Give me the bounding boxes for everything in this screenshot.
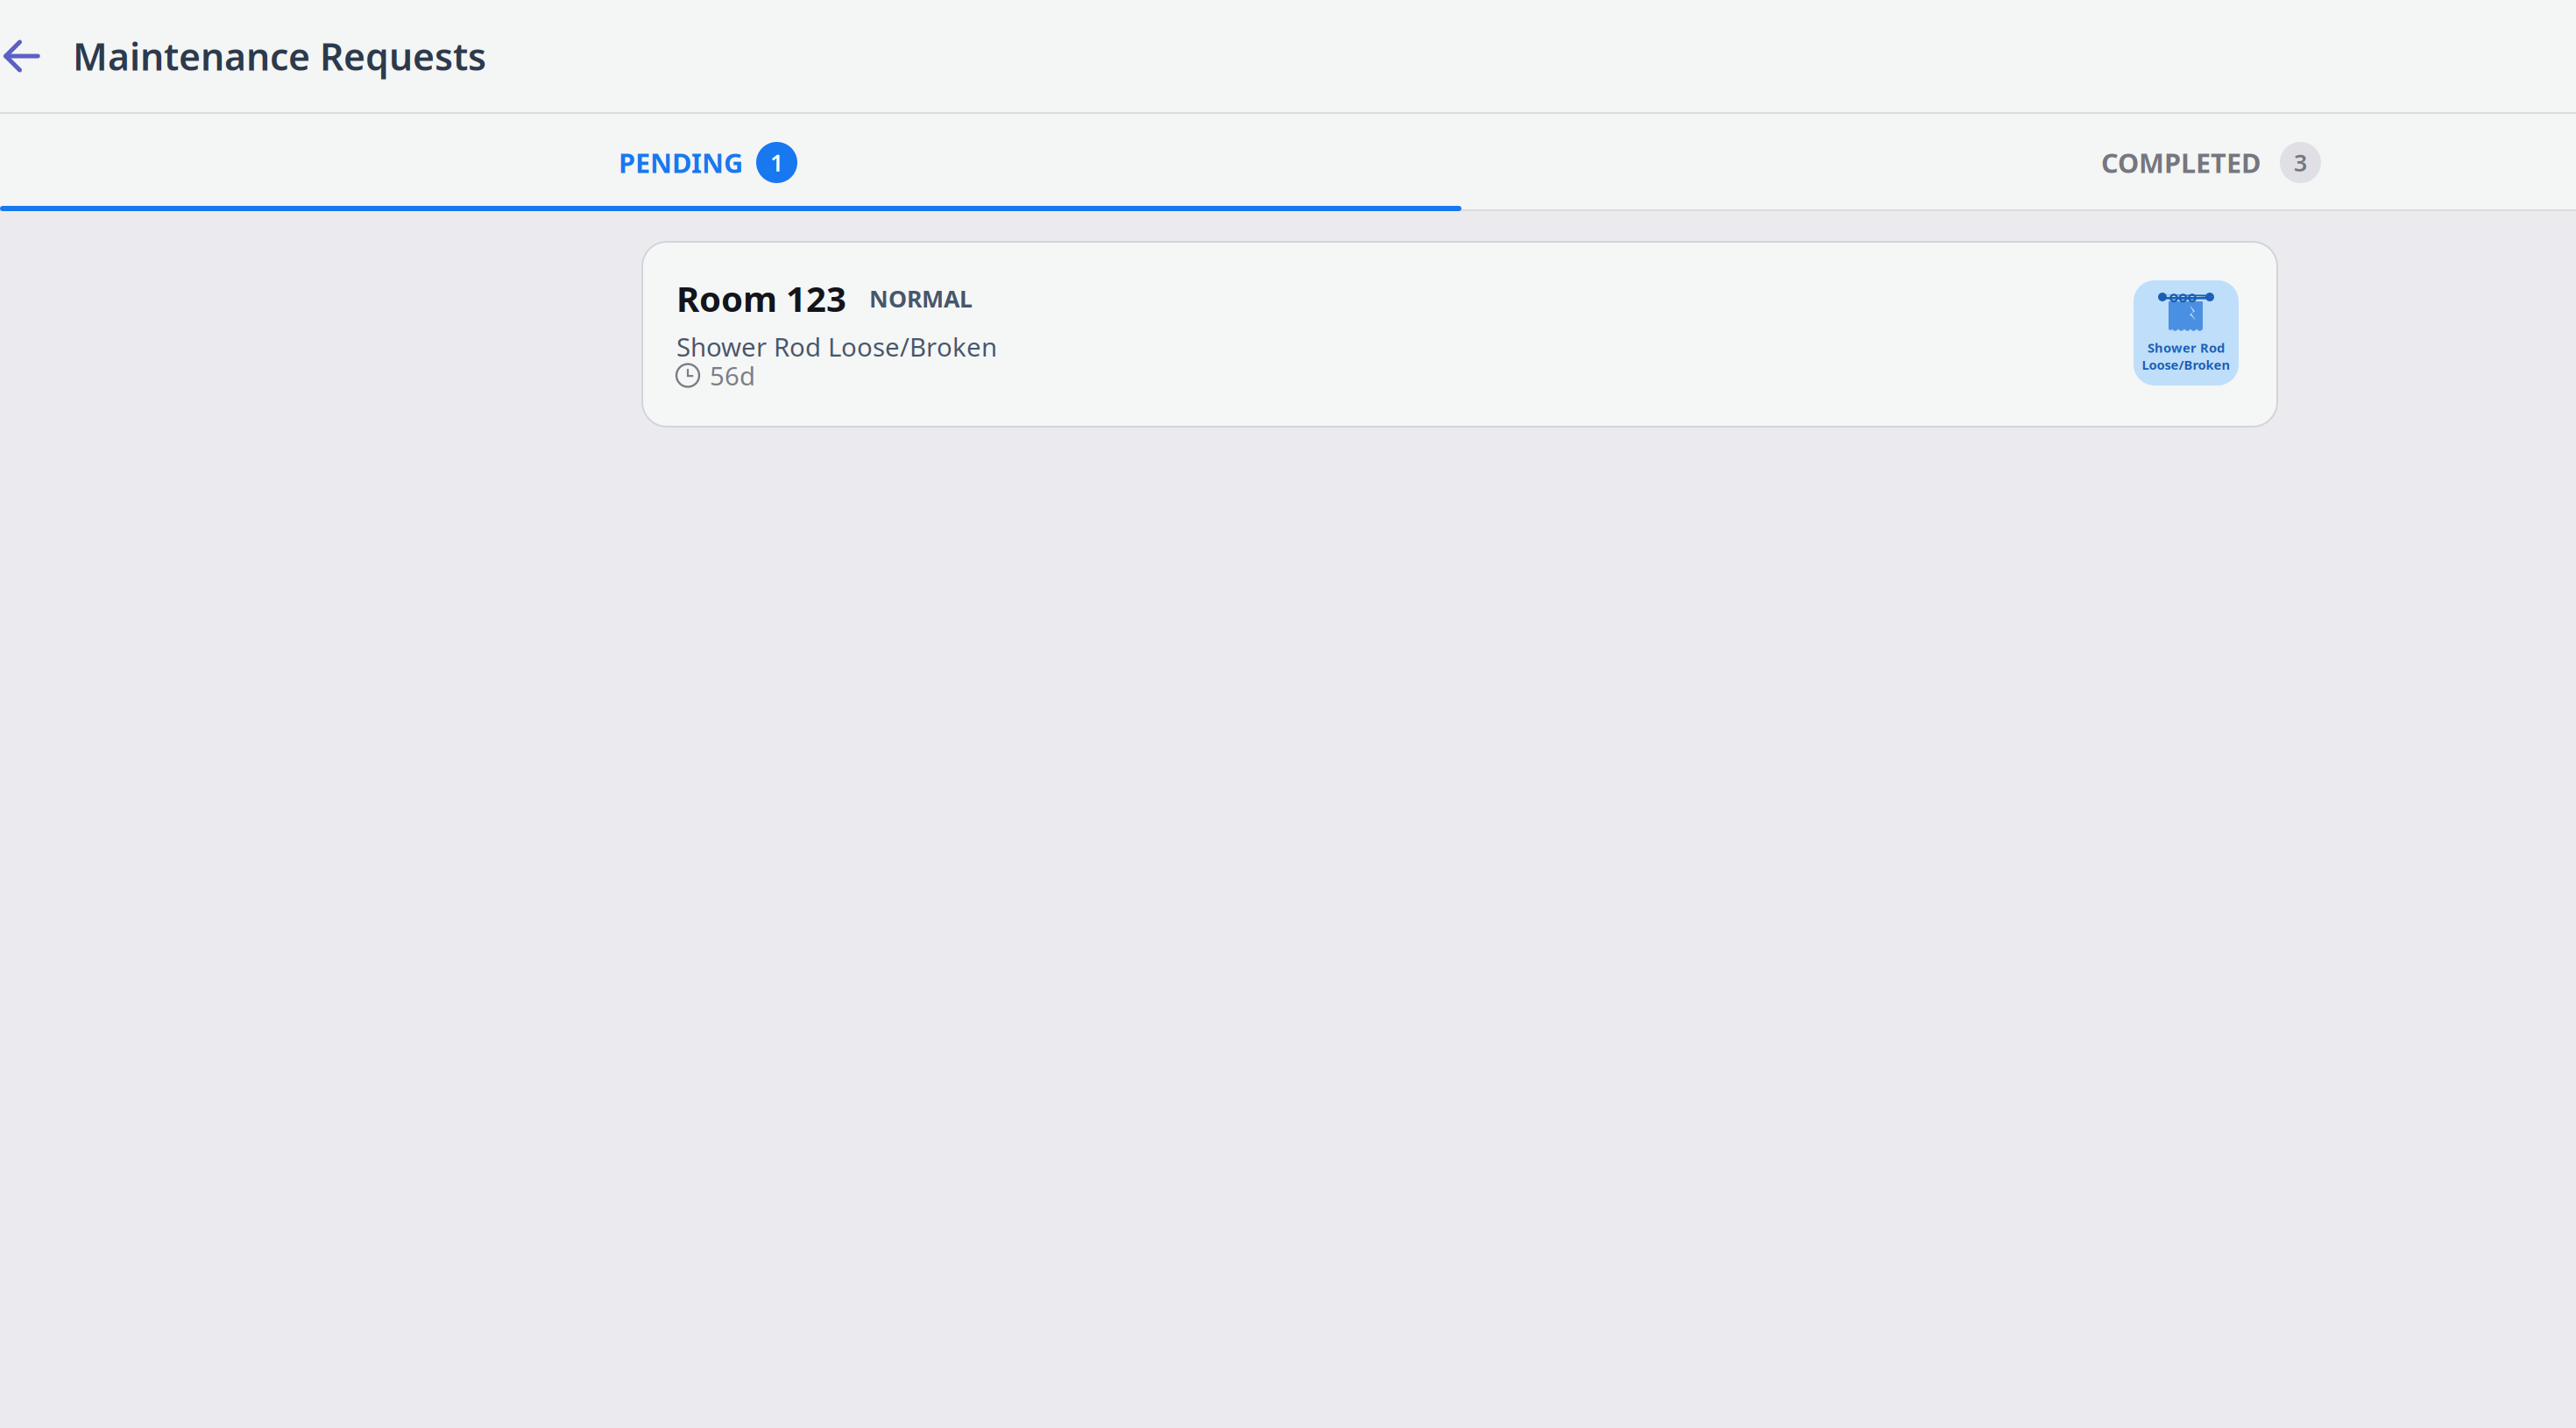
- staticText: NORMAL: [869, 283, 973, 314]
- staticText: PENDING: [619, 145, 743, 180]
- button[interactable]: PENDING: [619, 114, 797, 211]
- button[interactable]: Room 123: [642, 242, 2277, 427]
- staticText: COMPLETED: [2101, 145, 2261, 180]
- staticText: Loose/Broken: [2142, 356, 2230, 373]
- staticText: Room 123: [676, 275, 846, 322]
- button[interactable]: Back: [0, 0, 73, 112]
- staticText: Maintenance Requests: [73, 31, 486, 81]
- staticText: 56d: [710, 358, 755, 393]
- staticText: 3: [2294, 147, 2307, 178]
- staticText: 1: [770, 147, 783, 178]
- staticText: Shower Rod: [2148, 339, 2225, 356]
- button[interactable]: COMPLETED: [2101, 114, 2321, 211]
- staticText: Shower Rod Loose/Broken: [676, 329, 997, 364]
